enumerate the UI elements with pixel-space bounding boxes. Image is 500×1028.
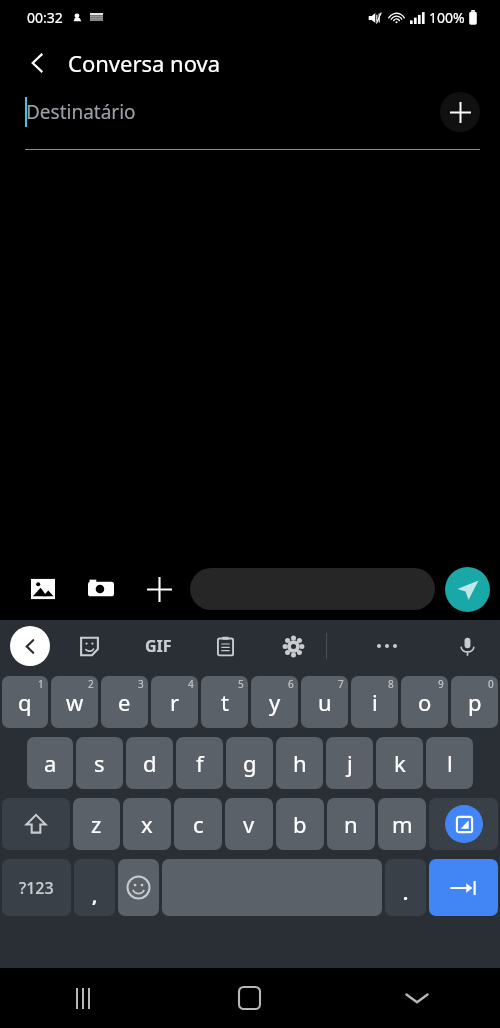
button[interactable]: u xyxy=(301,676,348,728)
button[interactable]: Collapse toolbar xyxy=(10,626,50,666)
staticText: x xyxy=(141,809,153,839)
button[interactable]: s xyxy=(76,737,123,789)
button[interactable]: Gallery xyxy=(22,568,64,610)
staticText: o xyxy=(418,687,432,717)
button[interactable]: i xyxy=(351,676,398,728)
button[interactable]: Stickers xyxy=(70,627,108,665)
button[interactable]: Next field xyxy=(429,859,498,916)
button[interactable]: Voice input xyxy=(448,627,486,665)
button[interactable]: , xyxy=(74,859,115,916)
button[interactable]: h xyxy=(276,737,323,789)
button[interactable]: More options xyxy=(368,627,406,665)
staticText: 100% xyxy=(429,8,465,27)
button[interactable]: d xyxy=(126,737,173,789)
staticText: ?123 xyxy=(19,877,54,899)
button[interactable]: GIF xyxy=(136,627,180,665)
button[interactable]: j xyxy=(326,737,373,789)
button[interactable]: o xyxy=(401,676,448,728)
staticText: p xyxy=(468,687,482,717)
button[interactable]: c xyxy=(174,798,222,850)
staticText: Conversa nova xyxy=(68,48,221,78)
button[interactable]: w xyxy=(51,676,98,728)
staticText: 6 xyxy=(288,677,294,691)
staticText: l xyxy=(447,748,453,778)
button[interactable]: Hide keyboard xyxy=(333,968,500,1028)
staticText: 5 xyxy=(238,677,244,691)
button[interactable]: m xyxy=(378,798,426,850)
staticText: 0 xyxy=(488,677,494,691)
staticText: 4 xyxy=(188,677,194,691)
staticText: a xyxy=(44,748,57,778)
button[interactable]: l xyxy=(426,737,473,789)
button[interactable]: r xyxy=(151,676,198,728)
button[interactable]: n xyxy=(327,798,375,850)
staticText: 8 xyxy=(388,677,394,691)
staticText: , xyxy=(92,884,98,909)
staticText: y xyxy=(269,687,281,717)
staticText: v xyxy=(243,809,255,839)
staticText: e xyxy=(118,687,131,717)
button[interactable]: z xyxy=(73,798,120,850)
button[interactable]: a xyxy=(27,737,73,789)
button[interactable]: Shift xyxy=(2,798,70,850)
button[interactable]: x xyxy=(123,798,171,850)
button[interactable]: Camera xyxy=(80,568,122,610)
staticText: z xyxy=(91,809,102,839)
staticText: g xyxy=(243,748,257,778)
staticText: m xyxy=(392,809,413,839)
staticText: j xyxy=(347,748,353,778)
staticText: k xyxy=(394,748,406,778)
staticText: 3 xyxy=(138,677,144,691)
button[interactable]: y xyxy=(251,676,298,728)
staticText: 7 xyxy=(338,677,344,691)
staticText: 9 xyxy=(438,677,444,691)
button[interactable]: b xyxy=(276,798,324,850)
button[interactable]: Backspace xyxy=(429,798,498,850)
button[interactable]: ?123 xyxy=(2,859,71,916)
button[interactable]: Add recipient xyxy=(440,92,480,132)
button[interactable] xyxy=(190,568,435,610)
staticText: w xyxy=(66,687,84,717)
button[interactable]: v xyxy=(225,798,273,850)
button[interactable]: e xyxy=(101,676,148,728)
button[interactable]: q xyxy=(2,676,48,728)
button[interactable]: Recent apps xyxy=(0,968,166,1028)
button[interactable]: f xyxy=(176,737,223,789)
staticText: 2 xyxy=(88,677,94,691)
button[interactable]: More attachments xyxy=(138,568,180,610)
staticText: s xyxy=(94,748,105,778)
staticText: f xyxy=(196,748,204,778)
button[interactable]: g xyxy=(226,737,273,789)
staticText: GIF xyxy=(145,635,172,657)
staticText: t xyxy=(221,687,229,717)
button[interactable]: Clipboard xyxy=(206,627,244,665)
button[interactable]: p xyxy=(451,676,498,728)
staticText: u xyxy=(318,687,332,717)
button[interactable]: Home xyxy=(166,968,333,1028)
staticText: Destinatário xyxy=(26,99,136,125)
staticText: 00:32 xyxy=(27,8,63,27)
button[interactable]: Back xyxy=(14,39,62,87)
staticText: d xyxy=(143,748,157,778)
staticText: 1 xyxy=(38,677,44,691)
staticText: q xyxy=(18,687,32,717)
button[interactable]: Emoji xyxy=(118,859,159,916)
button[interactable]: Send xyxy=(445,567,490,612)
staticText: b xyxy=(293,809,307,839)
staticText: h xyxy=(293,748,307,778)
button[interactable]: t xyxy=(201,676,248,728)
staticText: r xyxy=(170,687,180,717)
staticText: c xyxy=(193,809,204,839)
staticText: n xyxy=(344,809,358,839)
button[interactable]: k xyxy=(376,737,423,789)
staticText: i xyxy=(372,687,378,717)
staticText: . xyxy=(403,881,409,906)
button[interactable]: . xyxy=(385,859,426,916)
button[interactable]: Keyboard settings xyxy=(274,627,312,665)
